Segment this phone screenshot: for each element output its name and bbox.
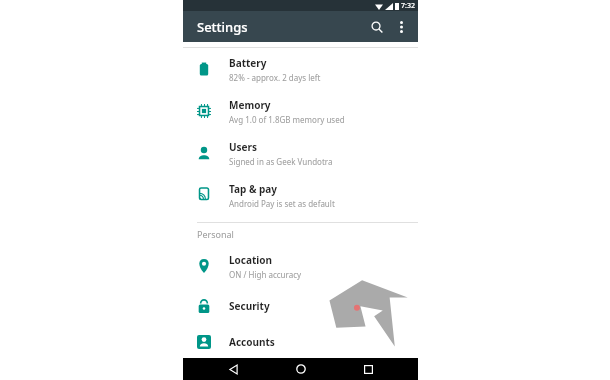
staticText: Personal: [197, 228, 234, 240]
button[interactable]: Tap & pay: [183, 174, 418, 216]
staticText: Memory: [229, 98, 271, 112]
staticText: Battery: [229, 56, 267, 70]
button[interactable]: Security: [183, 287, 418, 325]
staticText: Settings: [197, 18, 248, 36]
button[interactable]: Search: [364, 14, 390, 40]
button[interactable]: More options: [390, 16, 412, 38]
staticText: Users: [229, 140, 258, 154]
button[interactable]: Home: [284, 358, 318, 380]
button[interactable]: Recents: [351, 358, 385, 380]
staticText: Security: [229, 299, 270, 313]
staticText: 7:32: [401, 1, 415, 11]
button[interactable]: Back: [216, 358, 250, 380]
staticText: ON / High accuracy: [229, 269, 302, 280]
button[interactable]: Accounts: [183, 325, 418, 358]
staticText: 82% - approx. 2 days left: [229, 72, 321, 83]
staticText: Android Pay is set as default: [229, 198, 335, 209]
button[interactable]: Location: [183, 245, 418, 287]
staticText: Location: [229, 253, 273, 267]
staticText: Tap & pay: [229, 182, 277, 196]
button[interactable]: Users: [183, 132, 418, 174]
staticText: Avg 1.0 of 1.8GB memory used: [229, 114, 345, 125]
button[interactable]: Battery: [183, 48, 418, 90]
staticText: Accounts: [229, 335, 275, 349]
staticText: Signed in as Geek Vundotra: [229, 156, 333, 167]
button[interactable]: Memory: [183, 90, 418, 132]
